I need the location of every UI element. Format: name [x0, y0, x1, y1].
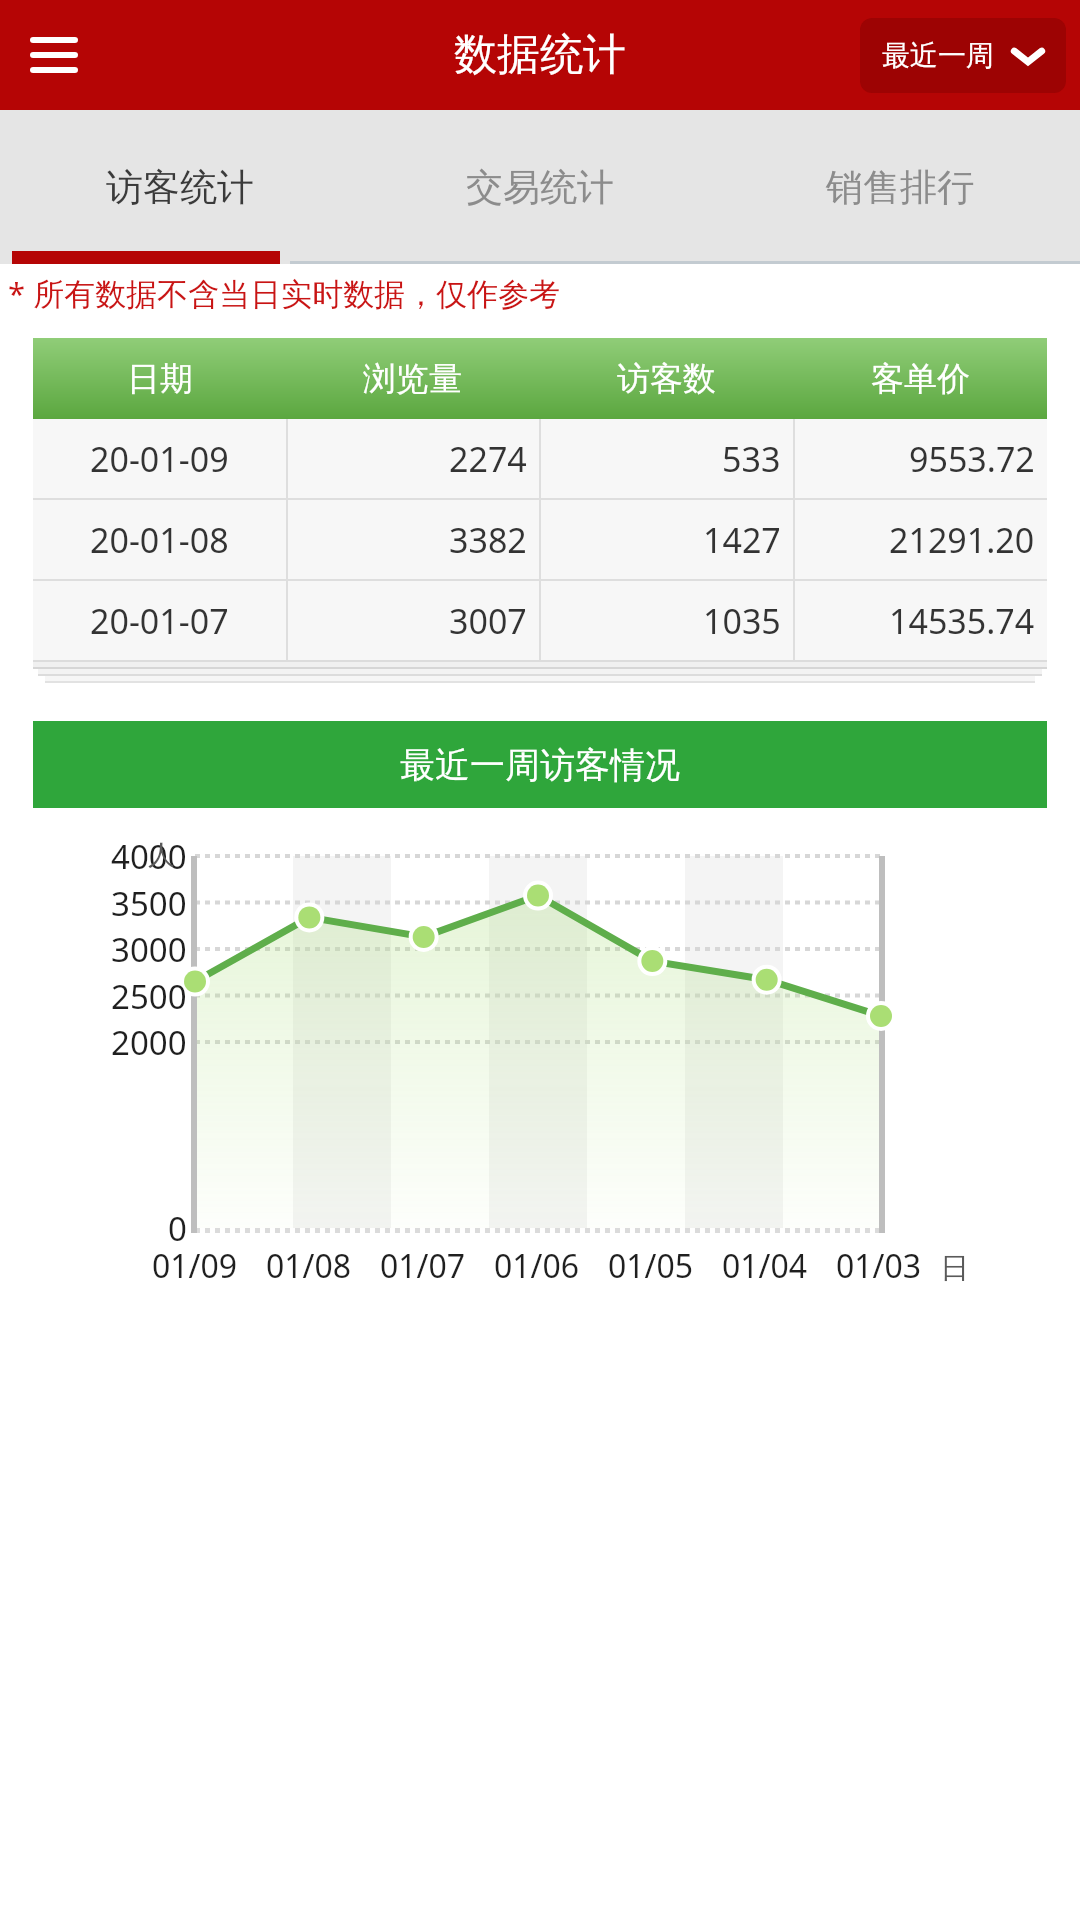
staticText: 01/05: [608, 1244, 694, 1288]
button[interactable]: 最近一周访客情况: [33, 721, 1047, 808]
staticText: * 所有数据不含当日实时数据，仅作参考: [8, 272, 561, 314]
staticText: 3000: [111, 927, 187, 972]
staticText: 533: [722, 436, 781, 482]
button[interactable]: 访客统计: [0, 110, 360, 264]
staticText: 01/04: [722, 1244, 808, 1288]
staticText: 01/06: [494, 1244, 580, 1288]
button[interactable]: Menu: [12, 13, 96, 97]
staticText: 客单价: [871, 358, 970, 400]
staticText: 3382: [449, 517, 527, 563]
staticText: 20-01-08: [90, 517, 229, 563]
staticText: 2500: [111, 974, 187, 1019]
staticText: 日期: [127, 358, 193, 400]
staticText: 0: [168, 1206, 187, 1251]
button[interactable]: 最近一周: [860, 18, 1066, 93]
staticText: 最近一周: [882, 38, 994, 73]
staticText: 21291.20: [889, 517, 1035, 563]
staticText: 01/08: [266, 1244, 352, 1288]
staticText: 3007: [449, 598, 527, 644]
staticText: 20-01-07: [90, 598, 229, 644]
button[interactable]: 销售排行: [720, 110, 1080, 264]
staticText: 人: [148, 838, 175, 872]
staticText: 访客统计: [106, 164, 254, 211]
staticText: 3500: [111, 881, 187, 926]
staticText: 1035: [703, 598, 781, 644]
staticText: 01/09: [152, 1244, 238, 1288]
staticText: 1427: [703, 517, 781, 563]
staticText: 01/03: [836, 1244, 922, 1288]
staticText: 交易统计: [466, 164, 614, 211]
staticText: 01/07: [380, 1244, 466, 1288]
staticText: 最近一周访客情况: [400, 743, 680, 787]
staticText: 数据统计: [454, 28, 626, 82]
staticText: 9553.72: [909, 436, 1035, 482]
staticText: 销售排行: [826, 164, 974, 211]
staticText: 2000: [111, 1020, 187, 1065]
staticText: 14535.74: [889, 598, 1035, 644]
staticText: 访客数: [617, 358, 716, 400]
staticText: 浏览量: [363, 358, 462, 400]
button[interactable]: 交易统计: [360, 110, 720, 264]
staticText: 20-01-09: [90, 436, 229, 482]
staticText: 2274: [449, 436, 527, 482]
staticText: 日: [940, 1250, 969, 1287]
staticText: 4000: [111, 834, 187, 879]
